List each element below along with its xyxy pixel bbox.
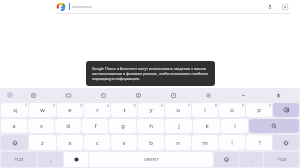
staticText: b [149,139,153,147]
button[interactable]: Emoji [214,152,238,167]
button[interactable]: z [29,135,56,150]
staticText: q [13,106,17,114]
button[interactable]: n [165,135,191,150]
button[interactable]: s [28,119,54,133]
staticText: h [149,122,153,130]
button[interactable]: j [165,119,192,133]
staticText: w [40,106,45,114]
button[interactable]: Theme [156,88,191,102]
staticText: 8 [215,104,217,108]
button[interactable]: w [29,103,56,117]
button[interactable]: v [111,135,137,150]
button[interactable]: GIF [51,88,86,102]
staticText: r [96,106,99,114]
button[interactable]: q [1,103,28,117]
staticText: ?123 [14,157,24,163]
button[interactable]: Shift [273,135,299,150]
staticText: c [96,139,99,147]
button[interactable]: ?123 [264,152,299,167]
staticText: 6 [161,104,163,108]
button[interactable]: f [82,119,108,133]
staticText: v [122,139,126,147]
staticText: o [230,106,234,114]
staticText: 4 [107,104,109,108]
staticText: ! [231,139,233,147]
button[interactable]: Shift [1,135,28,150]
staticText: 5 [134,104,136,108]
button[interactable]: Gboard [4,89,16,101]
staticText: 1 [25,104,27,108]
button[interactable] [72,2,264,12]
button[interactable]: Search [249,119,299,133]
button[interactable]: QWERTY [89,152,213,167]
button[interactable]: i [192,103,218,117]
button[interactable]: Settings [191,88,226,102]
staticText: Google Поиск и Ассистент могут использов… [92,66,209,81]
button[interactable]: Change language [64,152,88,167]
button[interactable]: ?123 [1,152,37,167]
staticText: ? [258,139,261,147]
staticText: a [12,122,16,130]
button[interactable]: Voice search [264,1,275,12]
staticText: 2 [53,104,55,108]
staticText: l [234,122,236,130]
staticText: 9 [242,104,244,108]
staticText: y [149,106,153,114]
button[interactable]: More [226,88,261,102]
button[interactable]: b [138,135,164,150]
staticText: z [41,139,44,147]
button[interactable]: g [109,119,136,133]
button[interactable]: d [55,119,81,133]
staticText: 7 [188,104,190,108]
button[interactable]: o [219,103,245,117]
staticText: k [205,122,209,130]
button[interactable]: c [84,135,110,150]
staticText: ?123 [277,157,287,163]
staticText: , [50,156,52,164]
button[interactable]: p [246,103,272,117]
button[interactable]: Google [56,2,65,11]
button[interactable]: Google Поиск и Ассистент могут использов… [86,61,215,86]
staticText: d [66,122,70,130]
button[interactable]: x [57,135,83,150]
button[interactable]: Clipboard [16,88,51,102]
staticText: u [176,106,180,114]
button[interactable]: l [221,119,248,133]
staticText: p [257,106,261,114]
button[interactable]: Voice input [261,88,296,102]
staticText: s [40,122,43,130]
staticText: e [68,106,72,114]
button[interactable]: Translate [121,88,156,102]
button[interactable]: a [1,119,27,133]
staticText: m [202,139,208,147]
staticText: j [178,122,180,130]
button[interactable]: e [57,103,83,117]
button[interactable]: Stickers [86,88,121,102]
button[interactable]: ? [246,135,272,150]
staticText: n [176,139,180,147]
staticText: f [94,122,97,130]
staticText: i [204,106,206,114]
staticText: x [68,139,72,147]
button[interactable]: m [192,135,218,150]
button[interactable]: y [138,103,164,117]
staticText: QWERTY [144,157,159,162]
staticText: . [250,156,252,164]
staticText: 3 [80,104,82,108]
staticText: t [123,106,126,114]
staticText: g [121,122,125,130]
button[interactable]: t [111,103,137,117]
button[interactable]: Backspace [273,103,299,117]
button[interactable]: , [38,152,63,167]
button[interactable]: k [193,119,220,133]
button[interactable]: Google Lens [279,1,290,12]
button[interactable]: u [165,103,191,117]
button[interactable]: ! [219,135,245,150]
button[interactable]: r [84,103,110,117]
button[interactable]: h [137,119,164,133]
staticText: 0 [269,104,271,108]
